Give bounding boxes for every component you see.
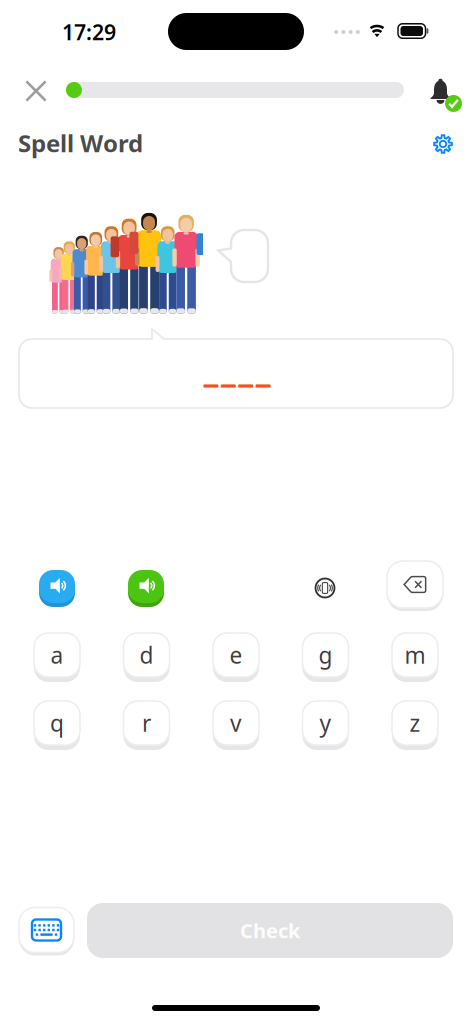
button[interactable]: d xyxy=(123,633,169,682)
staticText: Spell Word xyxy=(18,127,143,159)
button[interactable]: v xyxy=(213,701,259,750)
button[interactable]: Settings xyxy=(433,134,453,154)
staticText: 17:29 xyxy=(62,18,116,46)
staticText: v xyxy=(230,708,242,738)
staticText: d xyxy=(139,640,153,670)
button[interactable]: z xyxy=(392,701,438,750)
button[interactable]: r xyxy=(123,701,169,750)
button[interactable]: a xyxy=(34,633,80,682)
button[interactable]: Play word xyxy=(128,570,164,607)
button[interactable]: Close xyxy=(14,70,58,112)
button[interactable]: Check xyxy=(87,903,453,958)
button[interactable]: m xyxy=(392,633,438,682)
staticText: q xyxy=(50,708,64,738)
staticText: e xyxy=(229,640,242,670)
button[interactable]: e xyxy=(213,633,259,682)
staticText: a xyxy=(50,640,63,670)
button[interactable]: y xyxy=(302,701,348,750)
button[interactable]: Backspace xyxy=(387,561,443,612)
staticText: y xyxy=(319,708,331,738)
button[interactable]: Show keyboard xyxy=(19,906,74,954)
button[interactable]: Notifications xyxy=(430,78,462,112)
staticText: m xyxy=(404,640,425,670)
button[interactable]: Play word slowly xyxy=(39,570,75,607)
staticText: z xyxy=(409,708,420,738)
button[interactable]: g xyxy=(302,633,348,682)
button[interactable]: q xyxy=(34,701,80,750)
button[interactable]: Vibrate xyxy=(315,578,335,598)
staticText: Check xyxy=(240,917,300,944)
staticText: g xyxy=(318,640,332,670)
staticText: r xyxy=(142,708,151,738)
